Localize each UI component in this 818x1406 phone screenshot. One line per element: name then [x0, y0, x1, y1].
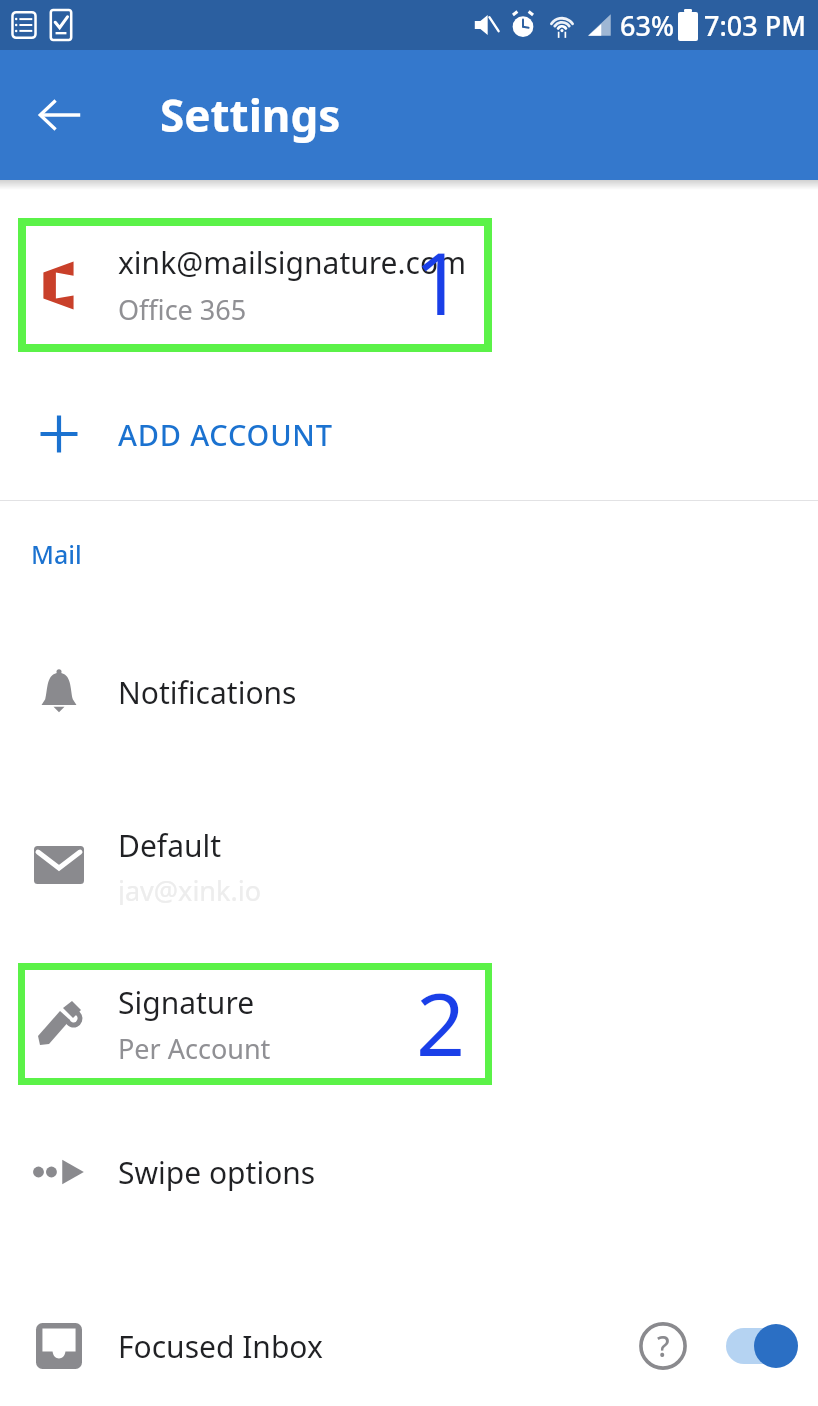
staticText: Settings	[160, 85, 341, 145]
staticText: Mail	[31, 537, 82, 571]
staticText: Default	[118, 825, 222, 866]
button[interactable]: Back	[28, 83, 92, 147]
staticText: 63%	[620, 7, 674, 44]
button[interactable]: Focused Inbox toggle	[722, 1318, 800, 1374]
button[interactable]: xink@mailsignature.com	[0, 218, 818, 352]
button[interactable]: Help	[634, 1317, 692, 1375]
staticText: 7:03 PM	[704, 7, 806, 44]
button[interactable]: Signature	[0, 963, 818, 1085]
staticText: Signature	[118, 982, 255, 1023]
staticText: Swipe options	[118, 1152, 316, 1193]
staticText: Notifications	[118, 672, 297, 713]
button[interactable]: Focused Inbox	[0, 1307, 818, 1385]
button[interactable]: Default	[0, 825, 818, 905]
staticText: 2	[416, 964, 466, 1081]
button[interactable]: ADD ACCOUNT	[0, 400, 818, 468]
staticText: ADD ACCOUNT	[118, 415, 333, 454]
staticText: 1	[414, 223, 464, 340]
staticText: Per Account	[118, 1030, 271, 1067]
button[interactable]: Swipe options	[0, 1137, 818, 1207]
staticText: Office 365	[118, 291, 247, 328]
staticText: ?	[657, 1327, 670, 1365]
staticText: jav@xink.io	[118, 872, 261, 905]
staticText: Focused Inbox	[118, 1326, 323, 1367]
staticText: xink@mailsignature.com	[118, 242, 467, 283]
button[interactable]: Notifications	[0, 657, 818, 727]
